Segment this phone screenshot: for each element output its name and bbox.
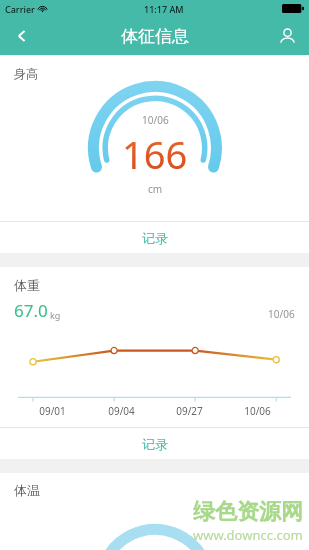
staticText: 体征信息 <box>121 26 189 47</box>
staticText: 10/06 <box>142 113 169 127</box>
staticText: 10/06 <box>244 404 271 418</box>
staticText: 身高 <box>14 66 38 81</box>
staticText: 09/01 <box>39 404 66 418</box>
button[interactable]: 记录 <box>0 428 309 459</box>
staticText: 记录 <box>142 436 168 452</box>
staticText: 11:17 AM <box>144 3 184 15</box>
staticText: 体重 <box>14 277 40 293</box>
staticText: 绿色资源网 <box>193 498 303 526</box>
staticText: 166 <box>122 128 188 180</box>
staticText: www.downcc.com <box>193 526 303 544</box>
button[interactable]: Profile <box>265 17 309 55</box>
staticText: kg <box>50 309 61 321</box>
staticText: 记录 <box>142 230 168 246</box>
staticText: cm <box>148 182 163 196</box>
staticText: 09/27 <box>176 404 203 418</box>
button[interactable]: 记录 <box>0 222 309 253</box>
staticText: 09/04 <box>108 404 135 418</box>
staticText: 体温 <box>14 482 40 498</box>
staticText: 67.0 <box>14 299 48 322</box>
button[interactable]: Back <box>0 17 44 55</box>
staticText: Carrier <box>5 3 35 15</box>
staticText: 10/06 <box>268 307 295 321</box>
